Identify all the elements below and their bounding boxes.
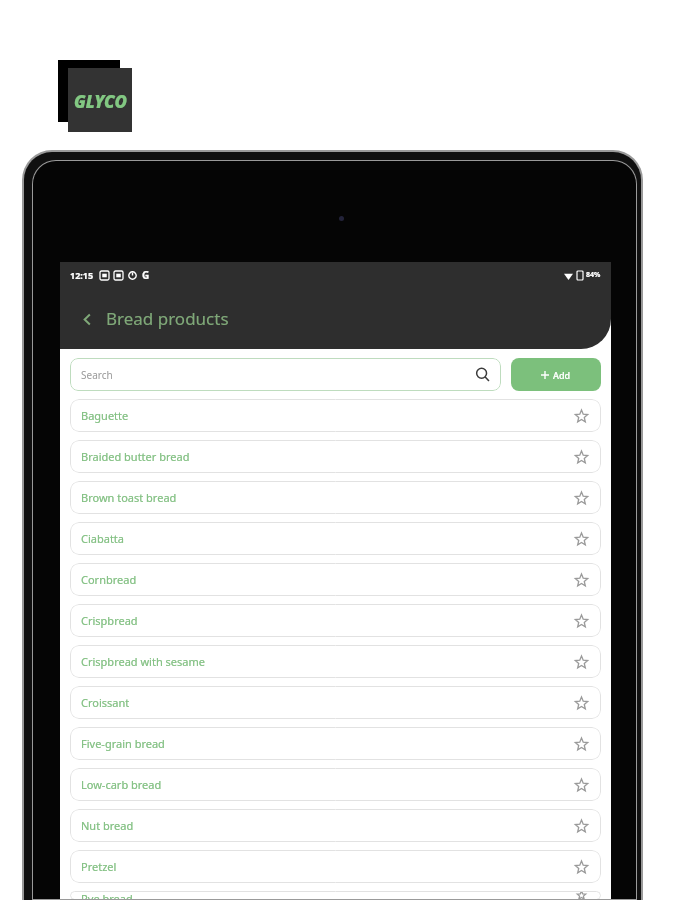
button[interactable]: Nut bread — [70, 809, 601, 842]
button[interactable]: Favourite Low-carb bread — [572, 776, 590, 794]
staticText: Baguette — [81, 408, 129, 423]
button[interactable]: Favourite Brown toast bread — [572, 489, 590, 507]
staticText: 84% — [586, 270, 601, 280]
button[interactable]: Brown toast bread — [70, 481, 601, 514]
staticText: Crispbread — [81, 613, 138, 628]
staticText: Croissant — [81, 695, 130, 710]
staticText: Pretzel — [81, 859, 117, 874]
button[interactable]: Ciabatta — [70, 522, 601, 555]
staticText: Brown toast bread — [81, 490, 177, 505]
button[interactable]: Baguette — [70, 399, 601, 432]
button[interactable]: Croissant — [70, 686, 601, 719]
button[interactable]: Low-carb bread — [70, 768, 601, 801]
button[interactable]: Pretzel — [70, 850, 601, 883]
button[interactable]: Favourite Pretzel — [572, 858, 590, 876]
staticText: Braided butter bread — [81, 449, 190, 464]
button[interactable]: Braided butter bread — [70, 440, 601, 473]
staticText: Nut bread — [81, 818, 134, 833]
staticText: Search — [81, 368, 113, 382]
button[interactable]: Favourite Nut bread — [572, 817, 590, 835]
button[interactable]: Favourite Braided butter bread — [572, 448, 590, 466]
button[interactable]: Favourite Five-grain bread — [572, 735, 590, 753]
staticText: Ciabatta — [81, 531, 125, 546]
button[interactable]: Add — [511, 358, 601, 391]
staticText: 12:15 — [70, 269, 94, 281]
button[interactable]: Favourite Crispbread with sesame — [572, 653, 590, 671]
staticText: Bread products — [106, 307, 229, 330]
button[interactable]: Favourite Croissant — [572, 694, 590, 712]
staticText: GLYCO — [74, 90, 127, 113]
button[interactable]: Crispbread with sesame — [70, 645, 601, 678]
staticText: Low-carb bread — [81, 777, 162, 792]
button[interactable]: Favourite Baguette — [572, 407, 590, 425]
button[interactable]: Favourite Ciabatta — [572, 530, 590, 548]
staticText: Cornbread — [81, 572, 137, 587]
button[interactable]: Rye bread — [70, 891, 601, 899]
button[interactable]: Crispbread — [70, 604, 601, 637]
button[interactable]: Back — [74, 306, 100, 332]
staticText: G — [142, 268, 150, 282]
button[interactable]: Search — [70, 358, 501, 391]
button[interactable]: Five-grain bread — [70, 727, 601, 760]
button[interactable]: Favourite Cornbread — [572, 571, 590, 589]
button[interactable]: Favourite Crispbread — [572, 612, 590, 630]
button[interactable]: Cornbread — [70, 563, 601, 596]
button[interactable]: Favourite Rye bread — [572, 891, 590, 899]
staticText: Rye bread — [81, 891, 133, 899]
staticText: Crispbread with sesame — [81, 654, 205, 669]
staticText: Five-grain bread — [81, 736, 165, 751]
staticText: Add — [553, 369, 571, 381]
